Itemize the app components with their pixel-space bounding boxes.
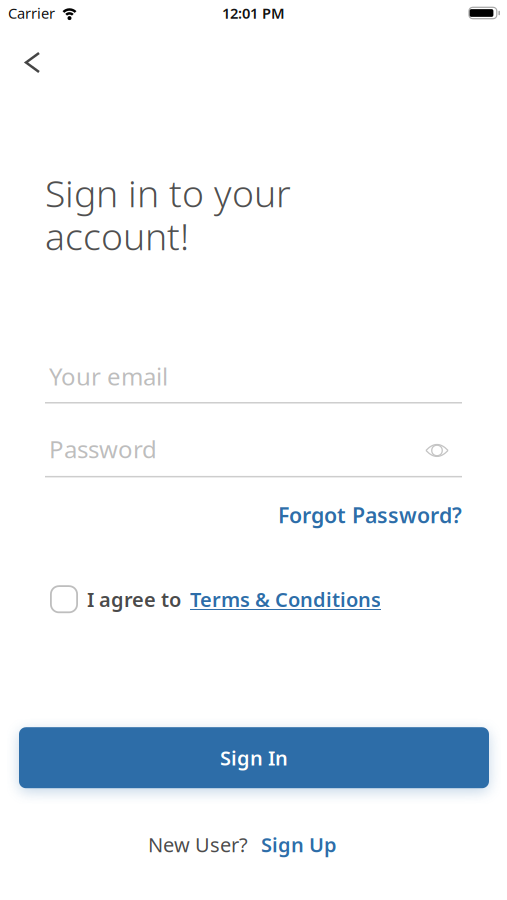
- button[interactable]: Forgot Password?: [278, 501, 462, 529]
- staticText: Sign In: [220, 744, 288, 771]
- staticText: Your email: [49, 360, 168, 392]
- staticText: Sign in to your: [45, 168, 291, 218]
- staticText: I agree to: [87, 586, 181, 612]
- staticText: Password: [49, 433, 157, 465]
- button[interactable]: Sign In: [19, 727, 489, 788]
- staticText: account!: [45, 211, 189, 261]
- button[interactable]: Terms & Conditions: [190, 586, 381, 612]
- staticText: Sign Up: [261, 831, 337, 858]
- staticText: Carrier: [8, 3, 55, 23]
- staticText: Terms & Conditions: [190, 586, 381, 612]
- staticText: New User?: [148, 831, 248, 858]
- staticText: 12:01 PM: [222, 3, 285, 23]
- button[interactable]: Show password: [426, 440, 462, 457]
- button[interactable]: I agree to Terms & Conditions: [50, 585, 78, 613]
- button[interactable]: Back: [0, 52, 59, 73]
- staticText: Forgot Password?: [278, 501, 462, 529]
- button[interactable]: Sign Up: [261, 831, 337, 858]
